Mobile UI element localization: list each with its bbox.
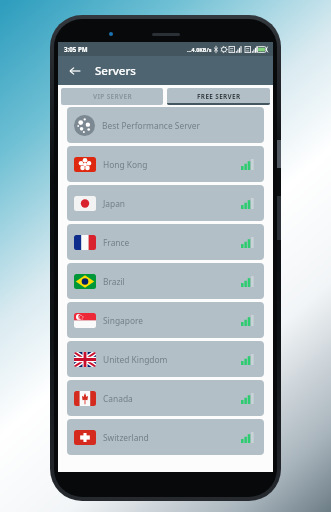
button[interactable]: France (67, 224, 264, 260)
button[interactable]: VIP SERVER (61, 88, 163, 105)
staticText: Best Performance Server (102, 120, 257, 131)
staticText: Servers (95, 63, 136, 79)
staticText: VIP SERVER (93, 92, 132, 101)
staticText: Switzerland (103, 432, 241, 443)
staticText: Brazil (103, 276, 241, 287)
staticText: Canada (103, 393, 241, 404)
staticText: United Kingdom (103, 354, 241, 365)
button[interactable]: Switzerland (67, 419, 264, 455)
staticText: Japan (103, 198, 241, 209)
button[interactable]: Hong Kong (67, 146, 264, 182)
staticText: Singapore (103, 315, 241, 326)
button[interactable]: Brazil (67, 263, 264, 299)
staticText: ...4.0KB/s (187, 46, 212, 53)
button[interactable]: FREE SERVER (167, 88, 270, 105)
staticText: FREE SERVER (197, 92, 241, 101)
button[interactable]: Best Performance Server (67, 107, 264, 143)
staticText: 3:05 PM (64, 45, 88, 53)
button[interactable]: Back (65, 61, 85, 81)
staticText: Hong Kong (103, 159, 241, 170)
button[interactable]: Japan (67, 185, 264, 221)
button[interactable]: Canada (67, 380, 264, 416)
button[interactable]: United Kingdom (67, 341, 264, 377)
staticText: France (103, 237, 241, 248)
button[interactable]: Singapore (67, 302, 264, 338)
